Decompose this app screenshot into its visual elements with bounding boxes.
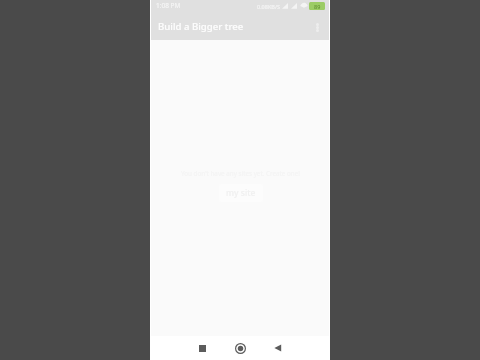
staticText: 1:08 PM [156,1,181,10]
staticText: Build a Bigger tree [158,20,244,33]
staticText: 89 [314,3,321,10]
button[interactable]: Back [259,336,297,360]
button[interactable]: Home [221,336,259,360]
button[interactable]: Recent apps [183,336,221,360]
staticText: my site [226,187,256,199]
staticText: 0.08KB/S [257,3,280,10]
